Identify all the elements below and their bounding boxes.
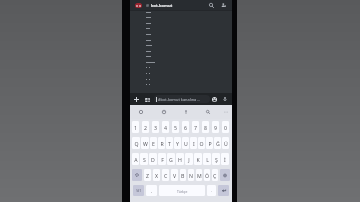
- button[interactable]: N: [188, 169, 194, 181]
- staticText: #bot-komut kanalına ...: [158, 97, 201, 102]
- button[interactable]: O: [198, 137, 205, 149]
- button[interactable]: 7: [192, 121, 199, 133]
- button[interactable]: 4: [162, 121, 169, 133]
- staticText: H: [178, 156, 182, 163]
- button[interactable]: Add attachment: [133, 96, 140, 103]
- button[interactable]: ,: [146, 185, 157, 196]
- button[interactable]: Ü: [222, 137, 229, 149]
- button[interactable]: 0: [222, 121, 229, 133]
- staticText: 7: [194, 124, 197, 131]
- staticText: U: [184, 140, 188, 147]
- staticText: 3: [154, 124, 157, 131]
- button[interactable]: B: [180, 169, 186, 181]
- button[interactable]: W: [141, 137, 149, 149]
- button[interactable]: M: [196, 169, 202, 181]
- button[interactable]: Emoji: [158, 105, 169, 119]
- button[interactable]: Server: [135, 3, 142, 8]
- button[interactable]: R: [158, 137, 165, 149]
- button[interactable]: A: [132, 153, 139, 165]
- button[interactable]: U: [182, 137, 189, 149]
- button[interactable]: 1: [132, 121, 139, 133]
- button[interactable]: 8: [202, 121, 209, 133]
- staticText: .: [211, 188, 213, 193]
- button[interactable]: V: [171, 169, 178, 181]
- button[interactable]: 6: [182, 121, 189, 133]
- button[interactable]: I: [190, 137, 197, 149]
- button[interactable]: #bot-komut kanalına ...: [154, 95, 210, 103]
- staticText: 2: [144, 124, 147, 131]
- staticText: 5: [174, 124, 177, 131]
- staticText: bot-komut: [151, 3, 173, 8]
- button[interactable]: Search: [202, 105, 213, 119]
- staticText: Ö: [205, 172, 210, 179]
- button[interactable]: H: [176, 153, 184, 165]
- staticText: D: [151, 156, 155, 163]
- staticText: T: [168, 140, 171, 147]
- button[interactable]: Z: [144, 169, 151, 181]
- button[interactable]: Ö: [204, 169, 210, 181]
- button[interactable]: D: [149, 153, 157, 165]
- button[interactable]: Türkçe: [159, 185, 205, 196]
- staticText: V: [173, 172, 177, 179]
- button[interactable]: Stickers: [135, 105, 146, 119]
- staticText: A: [134, 156, 138, 163]
- button[interactable]: !#1: [133, 185, 144, 196]
- staticText: Q: [134, 140, 139, 147]
- button[interactable]: 3: [152, 121, 159, 133]
- staticText: Ş: [215, 156, 218, 163]
- staticText: J: [188, 156, 190, 163]
- button[interactable]: K: [194, 153, 202, 165]
- button[interactable]: .: [207, 185, 216, 196]
- staticText: G: [169, 156, 173, 163]
- button[interactable]: Add members: [218, 0, 229, 10]
- button[interactable]: İ: [221, 153, 229, 165]
- button[interactable]: Q: [132, 137, 140, 149]
- staticText: P: [208, 140, 212, 147]
- button[interactable]: 2: [142, 121, 149, 133]
- staticText: S: [143, 156, 146, 163]
- button[interactable]: F: [158, 153, 166, 165]
- staticText: !#1: [136, 188, 142, 193]
- button[interactable]: S: [140, 153, 148, 165]
- button[interactable]: Y: [174, 137, 181, 149]
- staticText: C: [164, 172, 168, 179]
- staticText: R: [160, 140, 164, 147]
- button[interactable]: 9: [212, 121, 219, 133]
- staticText: M: [197, 172, 202, 179]
- staticText: O: [199, 140, 204, 147]
- button[interactable]: Shift: [132, 169, 142, 181]
- button[interactable]: Emoji: [210, 95, 218, 103]
- button[interactable]: E: [150, 137, 157, 149]
- button[interactable]: 5: [172, 121, 179, 133]
- button[interactable]: Stickers: [144, 96, 151, 103]
- staticText: Y: [176, 140, 179, 147]
- staticText: B: [181, 172, 185, 179]
- button[interactable]: X: [153, 169, 160, 181]
- button[interactable]: Ç: [212, 169, 218, 181]
- staticText: Z: [146, 172, 149, 179]
- button[interactable]: J: [185, 153, 193, 165]
- button[interactable]: Voice message: [221, 95, 229, 103]
- button[interactable]: Enter: [218, 185, 229, 196]
- button[interactable]: L: [203, 153, 211, 165]
- button[interactable]: Backspace: [220, 169, 230, 181]
- staticText: E: [152, 140, 155, 147]
- staticText: Ğ: [216, 140, 220, 147]
- button[interactable]: C: [162, 169, 169, 181]
- button[interactable]: T: [166, 137, 173, 149]
- button[interactable]: Ş: [212, 153, 220, 165]
- button[interactable]: Ğ: [214, 137, 221, 149]
- staticText: 4: [164, 124, 167, 131]
- button[interactable]: Voice input: [180, 105, 191, 119]
- staticText: 0: [224, 124, 227, 131]
- button[interactable]: P: [206, 137, 213, 149]
- staticText: İ: [224, 156, 226, 163]
- staticText: ,: [151, 188, 153, 193]
- staticText: I: [193, 140, 195, 147]
- staticText: Ü: [224, 140, 228, 147]
- staticText: 8: [204, 124, 207, 131]
- staticText: X: [155, 172, 159, 179]
- button[interactable]: Search: [206, 0, 217, 10]
- button[interactable]: G: [167, 153, 175, 165]
